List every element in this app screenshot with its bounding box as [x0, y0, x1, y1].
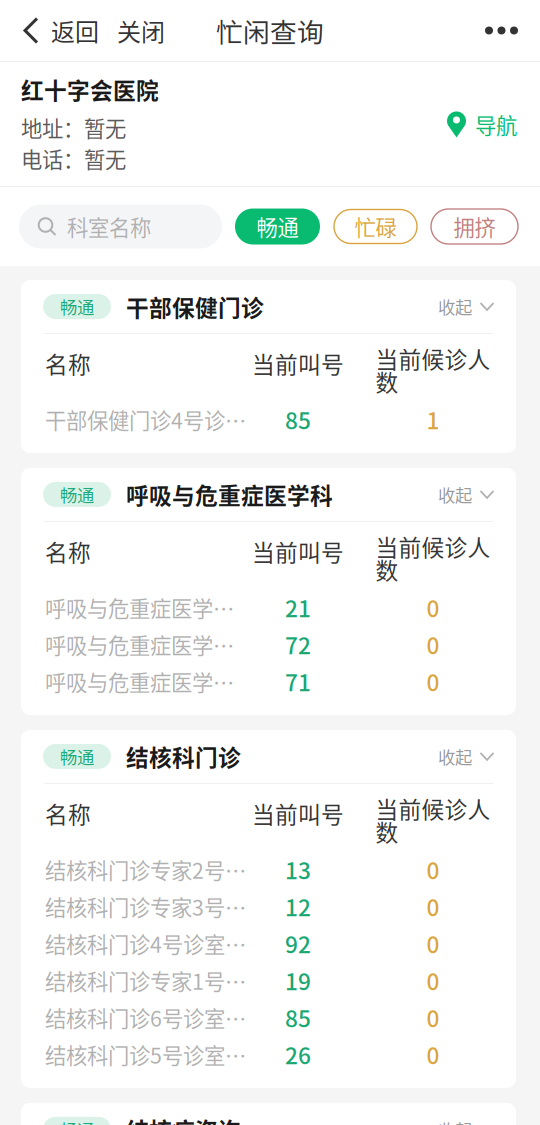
staticText: 当前候诊人数: [375, 347, 490, 393]
staticText: 71: [285, 665, 311, 698]
button[interactable]: 畅通: [235, 208, 320, 244]
staticText: 26: [285, 1038, 311, 1071]
staticText: 名称: [45, 535, 91, 568]
staticText: 结核科门诊5号诊室…: [45, 1039, 246, 1070]
staticText: 拥挤: [453, 211, 495, 242]
staticText: 13: [285, 853, 311, 886]
button[interactable]: 导航: [447, 73, 517, 140]
staticText: 85: [285, 403, 311, 436]
staticText: 当前叫号: [252, 347, 344, 380]
staticText: 0: [426, 964, 439, 997]
staticText: 12: [285, 890, 311, 923]
staticText: 关闭: [117, 13, 165, 48]
staticText: 当前叫号: [252, 535, 344, 568]
staticText: 电话：暂无: [21, 143, 126, 174]
staticText: 0: [426, 1038, 439, 1071]
button[interactable]: 拥挤: [431, 209, 518, 244]
staticText: 当前候诊人数: [375, 535, 490, 581]
staticText: 红十字会医院: [21, 73, 159, 106]
staticText: 收起: [438, 294, 472, 319]
staticText: 干部保健门诊4号诊…: [45, 404, 246, 435]
staticText: 当前叫号: [252, 797, 344, 830]
staticText: 返回: [51, 13, 99, 48]
staticText: 忙闲查询: [216, 11, 324, 50]
button[interactable]: 收起: [438, 482, 516, 507]
staticText: 当前候诊人数: [375, 797, 490, 843]
staticText: 0: [426, 1001, 439, 1034]
staticText: 呼吸与危重症医学…: [45, 592, 234, 623]
staticText: 0: [426, 890, 439, 923]
staticText: 导航: [475, 109, 517, 140]
staticText: 收起: [438, 482, 472, 507]
button[interactable]: 返回: [0, 13, 99, 48]
staticText: 1: [426, 403, 439, 436]
staticText: 收起: [438, 1117, 472, 1125]
staticText: 结核科门诊专家3号…: [45, 891, 246, 922]
button[interactable]: 更多: [485, 26, 540, 34]
staticText: 0: [426, 628, 439, 661]
staticText: 名称: [45, 347, 91, 380]
staticText: 结核科门诊4号诊室…: [45, 928, 246, 959]
staticText: 畅通: [60, 482, 94, 507]
staticText: 0: [426, 591, 439, 624]
button[interactable]: 收起: [438, 1117, 516, 1125]
button[interactable]: 忙碌: [334, 209, 417, 243]
staticText: 92: [285, 927, 311, 960]
staticText: 呼吸与危重症医学科: [126, 478, 333, 511]
staticText: 结核科门诊: [126, 740, 241, 773]
staticText: 地址：暂无: [21, 112, 126, 143]
button[interactable]: 关闭: [99, 13, 165, 48]
staticText: 科室名称: [67, 211, 151, 242]
button[interactable]: 收起: [438, 294, 516, 319]
staticText: 19: [285, 964, 311, 997]
staticText: 0: [426, 665, 439, 698]
staticText: 0: [426, 927, 439, 960]
staticText: 畅通: [60, 294, 94, 319]
staticText: 结核科门诊专家1号…: [45, 965, 246, 996]
staticText: 畅通: [60, 1117, 94, 1125]
staticText: 畅通: [60, 744, 94, 769]
staticText: 72: [285, 628, 311, 661]
staticText: 21: [285, 591, 311, 624]
staticText: 畅通: [256, 211, 298, 242]
button[interactable]: 收起: [438, 744, 516, 769]
staticText: 收起: [438, 744, 472, 769]
staticText: 结核科门诊专家2号…: [45, 854, 246, 885]
staticText: 0: [426, 853, 439, 886]
staticText: 呼吸与危重症医学…: [45, 629, 234, 660]
staticText: 忙碌: [354, 211, 396, 242]
staticText: 结核科门诊6号诊室…: [45, 1002, 246, 1033]
staticText: 干部保健门诊: [126, 290, 264, 323]
staticText: 85: [285, 1001, 311, 1034]
staticText: 名称: [45, 797, 91, 830]
staticText: 结核病咨询: [126, 1113, 241, 1125]
staticText: 呼吸与危重症医学…: [45, 666, 234, 697]
